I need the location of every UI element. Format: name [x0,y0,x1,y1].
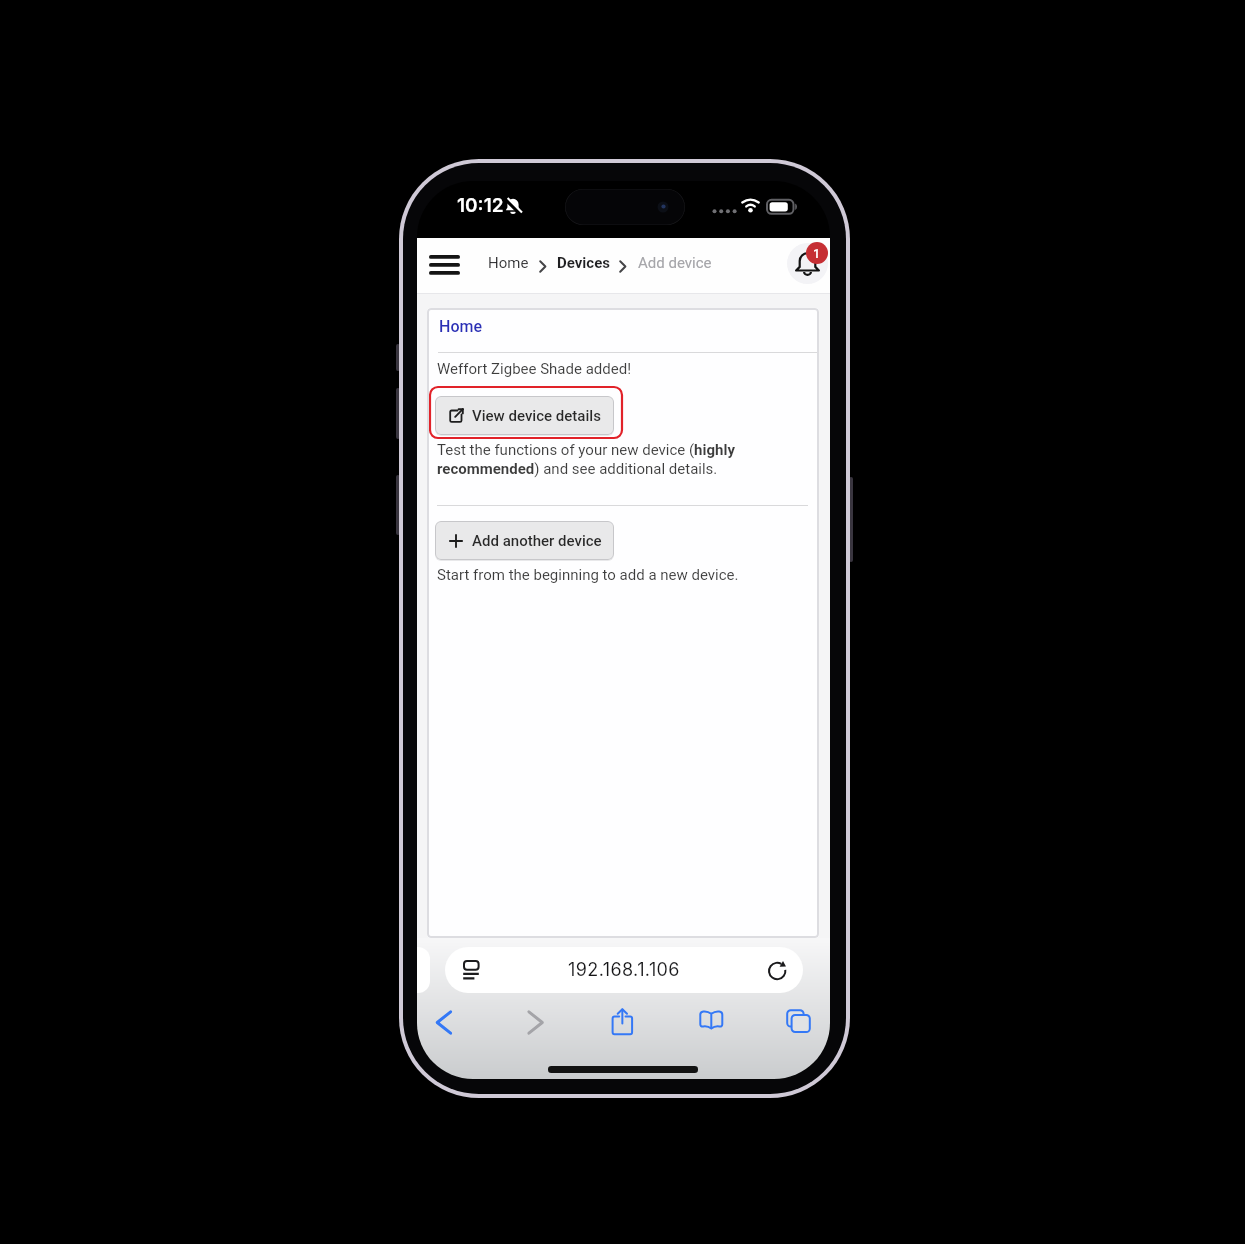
button[interactable] [786,1009,811,1033]
button[interactable]: Home [439,317,482,336]
staticText: Add another device [472,532,602,550]
button[interactable] [423,248,465,282]
staticText: 1 [813,246,821,261]
button[interactable] [611,1008,635,1036]
staticText: Start from the beginning to add a new de… [437,566,739,584]
staticText: 192.168.1.106 [568,959,680,981]
button[interactable]: Add another device [435,521,614,560]
button[interactable] [435,1010,453,1035]
button[interactable] [787,243,828,284]
button[interactable]: Home [488,254,529,272]
staticText: 10:12 [457,194,504,217]
staticText: Weffort Zigbee Shade added! [437,360,632,378]
button[interactable]: View device details [435,396,614,435]
button[interactable] [527,1010,545,1035]
staticText: Add device [638,254,712,272]
staticText: View device details [472,407,601,425]
button[interactable]: 192.168.1.106 [445,947,803,993]
staticText: Test the functions of your new device (h… [437,441,735,477]
button[interactable] [699,1010,724,1031]
staticText: Home [439,317,482,336]
button[interactable]: Devices [557,254,610,272]
